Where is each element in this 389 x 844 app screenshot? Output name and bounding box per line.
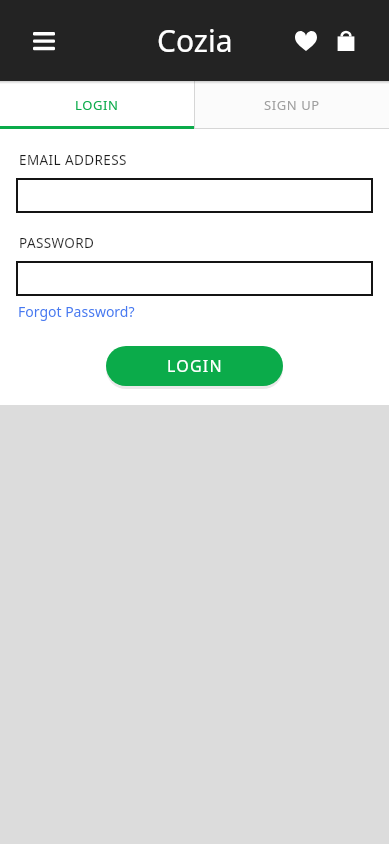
- staticText: EMAIL ADDRESS: [19, 151, 127, 169]
- button[interactable]: Forgot Password?: [18, 302, 135, 321]
- button[interactable]: LOGIN: [106, 346, 283, 386]
- button[interactable]: [16, 178, 373, 213]
- staticText: PASSWORD: [19, 234, 95, 252]
- button[interactable]: [16, 261, 373, 296]
- staticText: LOGIN: [167, 355, 223, 377]
- button[interactable]: [334, 29, 358, 53]
- staticText: Cozia: [157, 20, 233, 61]
- staticText: SIGN UP: [264, 96, 320, 114]
- button[interactable]: [32, 29, 56, 53]
- button[interactable]: SIGN UP: [195, 81, 389, 129]
- button[interactable]: [294, 29, 318, 53]
- staticText: LOGIN: [75, 96, 119, 114]
- button[interactable]: LOGIN: [0, 81, 194, 129]
